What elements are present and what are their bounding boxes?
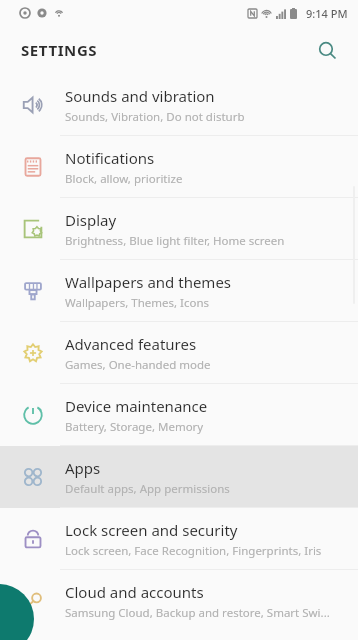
button[interactable]: Notifications xyxy=(0,136,358,198)
staticText: Apps xyxy=(65,458,101,478)
staticText: 9:14 PM xyxy=(306,6,348,21)
staticText: Samsung Cloud, Backup and restore, Smart… xyxy=(65,605,330,621)
staticText: Block, allow, prioritize xyxy=(65,171,183,187)
staticText: Sounds and vibration xyxy=(65,86,215,106)
staticText: Games, One-handed mode xyxy=(65,357,211,373)
staticText: Lock screen, Face Recognition, Fingerpri… xyxy=(65,543,322,559)
staticText: Lock screen and security xyxy=(65,520,238,540)
staticText: Display xyxy=(65,210,117,230)
staticText: Advanced features xyxy=(65,334,197,354)
staticText: Default apps, App permissions xyxy=(65,481,230,497)
staticText: Device maintenance xyxy=(65,396,208,416)
staticText: Cloud and accounts xyxy=(65,582,204,602)
button[interactable]: Advanced features xyxy=(0,322,358,384)
button[interactable]: Wallpapers and themes xyxy=(0,260,358,322)
staticText: SETTINGS xyxy=(21,40,98,60)
button[interactable]: Display xyxy=(0,198,358,260)
staticText: Wallpapers and themes xyxy=(65,272,232,292)
staticText: Brightness, Blue light filter, Home scre… xyxy=(65,233,285,249)
staticText: Wallpapers, Themes, Icons xyxy=(65,295,210,311)
button[interactable]: Lock screen and security xyxy=(0,508,358,570)
button[interactable]: Device maintenance xyxy=(0,384,358,446)
staticText: Battery, Storage, Memory xyxy=(65,419,204,435)
staticText: Sounds, Vibration, Do not disturb xyxy=(65,109,245,125)
button[interactable]: Apps xyxy=(0,446,358,508)
button[interactable]: Search xyxy=(310,33,344,67)
button[interactable]: Sounds and vibration xyxy=(0,74,358,136)
button[interactable]: Cloud and accounts xyxy=(0,570,358,632)
staticText: Notifications xyxy=(65,148,155,168)
